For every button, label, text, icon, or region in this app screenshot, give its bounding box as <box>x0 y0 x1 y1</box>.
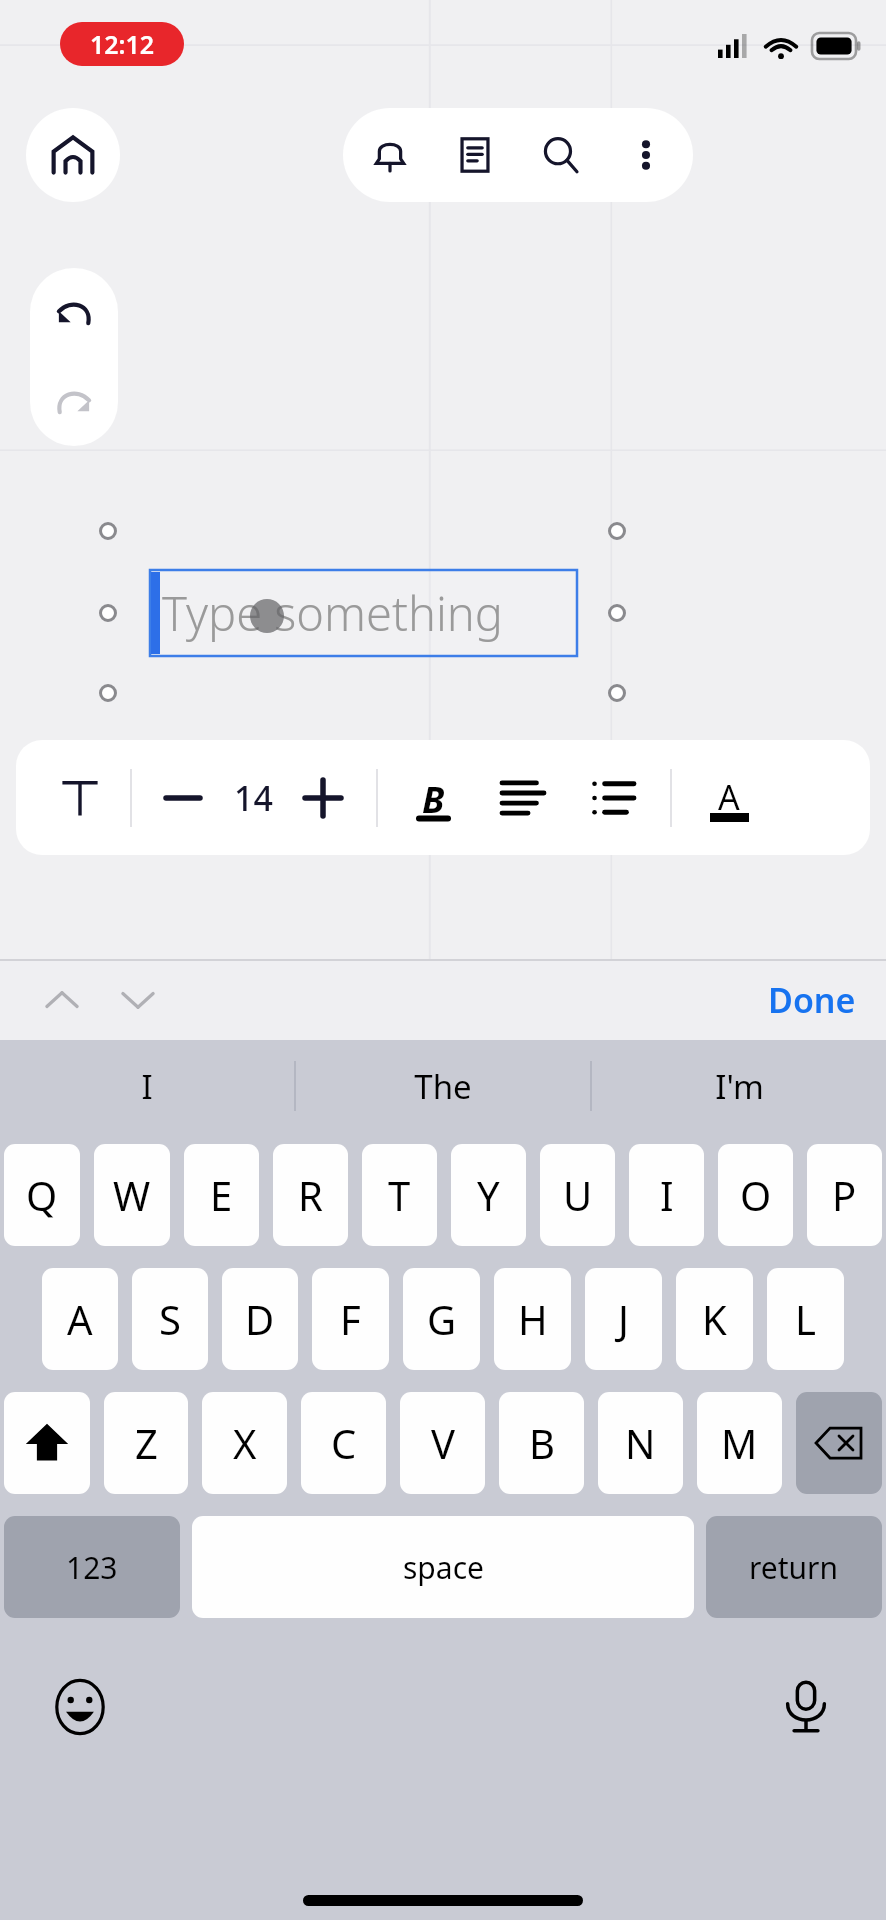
button[interactable]: G <box>403 1268 480 1370</box>
button[interactable]: J <box>585 1268 662 1370</box>
staticText: B <box>529 1416 555 1470</box>
staticText: A <box>718 774 740 820</box>
button[interactable]: N <box>598 1392 683 1494</box>
button[interactable]: S <box>132 1268 208 1370</box>
button[interactable]: Dictation <box>770 1671 842 1743</box>
button[interactable]: V <box>400 1392 485 1494</box>
staticText: O <box>740 1168 772 1222</box>
button[interactable]: E <box>184 1144 259 1246</box>
button[interactable]: H <box>494 1268 571 1370</box>
button[interactable]: 123 <box>4 1516 180 1618</box>
staticText: Done <box>768 977 856 1023</box>
button[interactable]: Q <box>4 1144 80 1246</box>
staticText: Z <box>135 1416 158 1470</box>
staticText: X <box>233 1416 257 1470</box>
button[interactable]: Done <box>754 965 870 1035</box>
button[interactable]: Text style <box>44 762 116 834</box>
staticText: A <box>67 1292 93 1346</box>
staticText: return <box>749 1547 839 1588</box>
button[interactable]: Type something <box>150 570 577 656</box>
staticText: L <box>795 1292 816 1346</box>
button[interactable]: Y <box>451 1144 526 1246</box>
button[interactable]: Increase font size <box>286 761 360 835</box>
staticText: M <box>721 1416 758 1470</box>
staticText: E <box>210 1168 233 1222</box>
button[interactable]: I <box>0 1040 294 1132</box>
staticText: I'm <box>715 1064 764 1109</box>
button[interactable]: The <box>296 1040 590 1132</box>
button[interactable]: O <box>718 1144 793 1246</box>
button[interactable]: F <box>312 1268 389 1370</box>
button[interactable]: Backspace <box>796 1392 882 1494</box>
staticText: space <box>403 1547 484 1588</box>
button[interactable]: Home <box>26 108 120 202</box>
staticText: Type something <box>162 581 503 645</box>
staticText: T <box>388 1168 411 1222</box>
button[interactable]: R <box>273 1144 348 1246</box>
button[interactable]: Redo <box>30 357 118 446</box>
button[interactable]: Undo <box>30 268 118 357</box>
staticText: D <box>245 1292 275 1346</box>
button[interactable]: Emoji <box>44 1671 116 1743</box>
staticText: S <box>159 1292 181 1346</box>
button[interactable]: space <box>192 1516 694 1618</box>
staticText: C <box>331 1416 357 1470</box>
button[interactable]: L <box>767 1268 844 1370</box>
staticText: B <box>422 775 445 821</box>
button[interactable]: W <box>94 1144 170 1246</box>
button[interactable]: Z <box>104 1392 188 1494</box>
button[interactable]: Notifications <box>352 108 428 202</box>
button[interactable]: return <box>706 1516 882 1618</box>
button[interactable]: C <box>301 1392 386 1494</box>
button[interactable]: D <box>222 1268 298 1370</box>
staticText: I <box>141 1064 153 1109</box>
button[interactable]: Document <box>437 108 513 202</box>
button[interactable]: Search <box>523 108 599 202</box>
button[interactable]: Bulleted list <box>574 759 652 837</box>
staticText: W <box>113 1168 151 1222</box>
staticText: H <box>518 1292 548 1346</box>
staticText: G <box>427 1292 457 1346</box>
button[interactable]: Shift <box>4 1392 90 1494</box>
staticText: P <box>832 1168 857 1222</box>
staticText: K <box>702 1292 727 1346</box>
staticText: 123 <box>66 1547 118 1588</box>
button[interactable]: Bold <box>394 759 472 837</box>
staticText: Y <box>477 1168 500 1222</box>
button[interactable]: X <box>202 1392 287 1494</box>
button[interactable]: A <box>42 1268 118 1370</box>
staticText: V <box>431 1416 455 1470</box>
button[interactable]: K <box>676 1268 753 1370</box>
button[interactable]: P <box>807 1144 882 1246</box>
staticText: N <box>625 1416 656 1470</box>
staticText: U <box>563 1168 593 1222</box>
staticText: J <box>618 1292 629 1346</box>
button[interactable]: More options <box>608 108 684 202</box>
button[interactable]: B <box>499 1392 584 1494</box>
button[interactable]: I'm <box>592 1040 886 1132</box>
staticText: 12:12 <box>90 27 155 61</box>
button[interactable]: I <box>629 1144 704 1246</box>
button[interactable]: Text color <box>690 759 768 837</box>
staticText: The <box>414 1064 472 1109</box>
staticText: R <box>298 1168 323 1222</box>
button[interactable]: U <box>540 1144 615 1246</box>
button[interactable]: Next field <box>104 966 172 1034</box>
button[interactable]: T <box>362 1144 437 1246</box>
staticText: F <box>340 1292 361 1346</box>
button[interactable]: Previous field <box>28 966 96 1034</box>
button[interactable]: Decrease font size <box>146 761 220 835</box>
button[interactable]: Align <box>484 759 562 837</box>
staticText: I <box>660 1168 674 1222</box>
staticText: Q <box>26 1168 58 1222</box>
staticText: 14 <box>234 775 273 821</box>
button[interactable]: M <box>697 1392 782 1494</box>
